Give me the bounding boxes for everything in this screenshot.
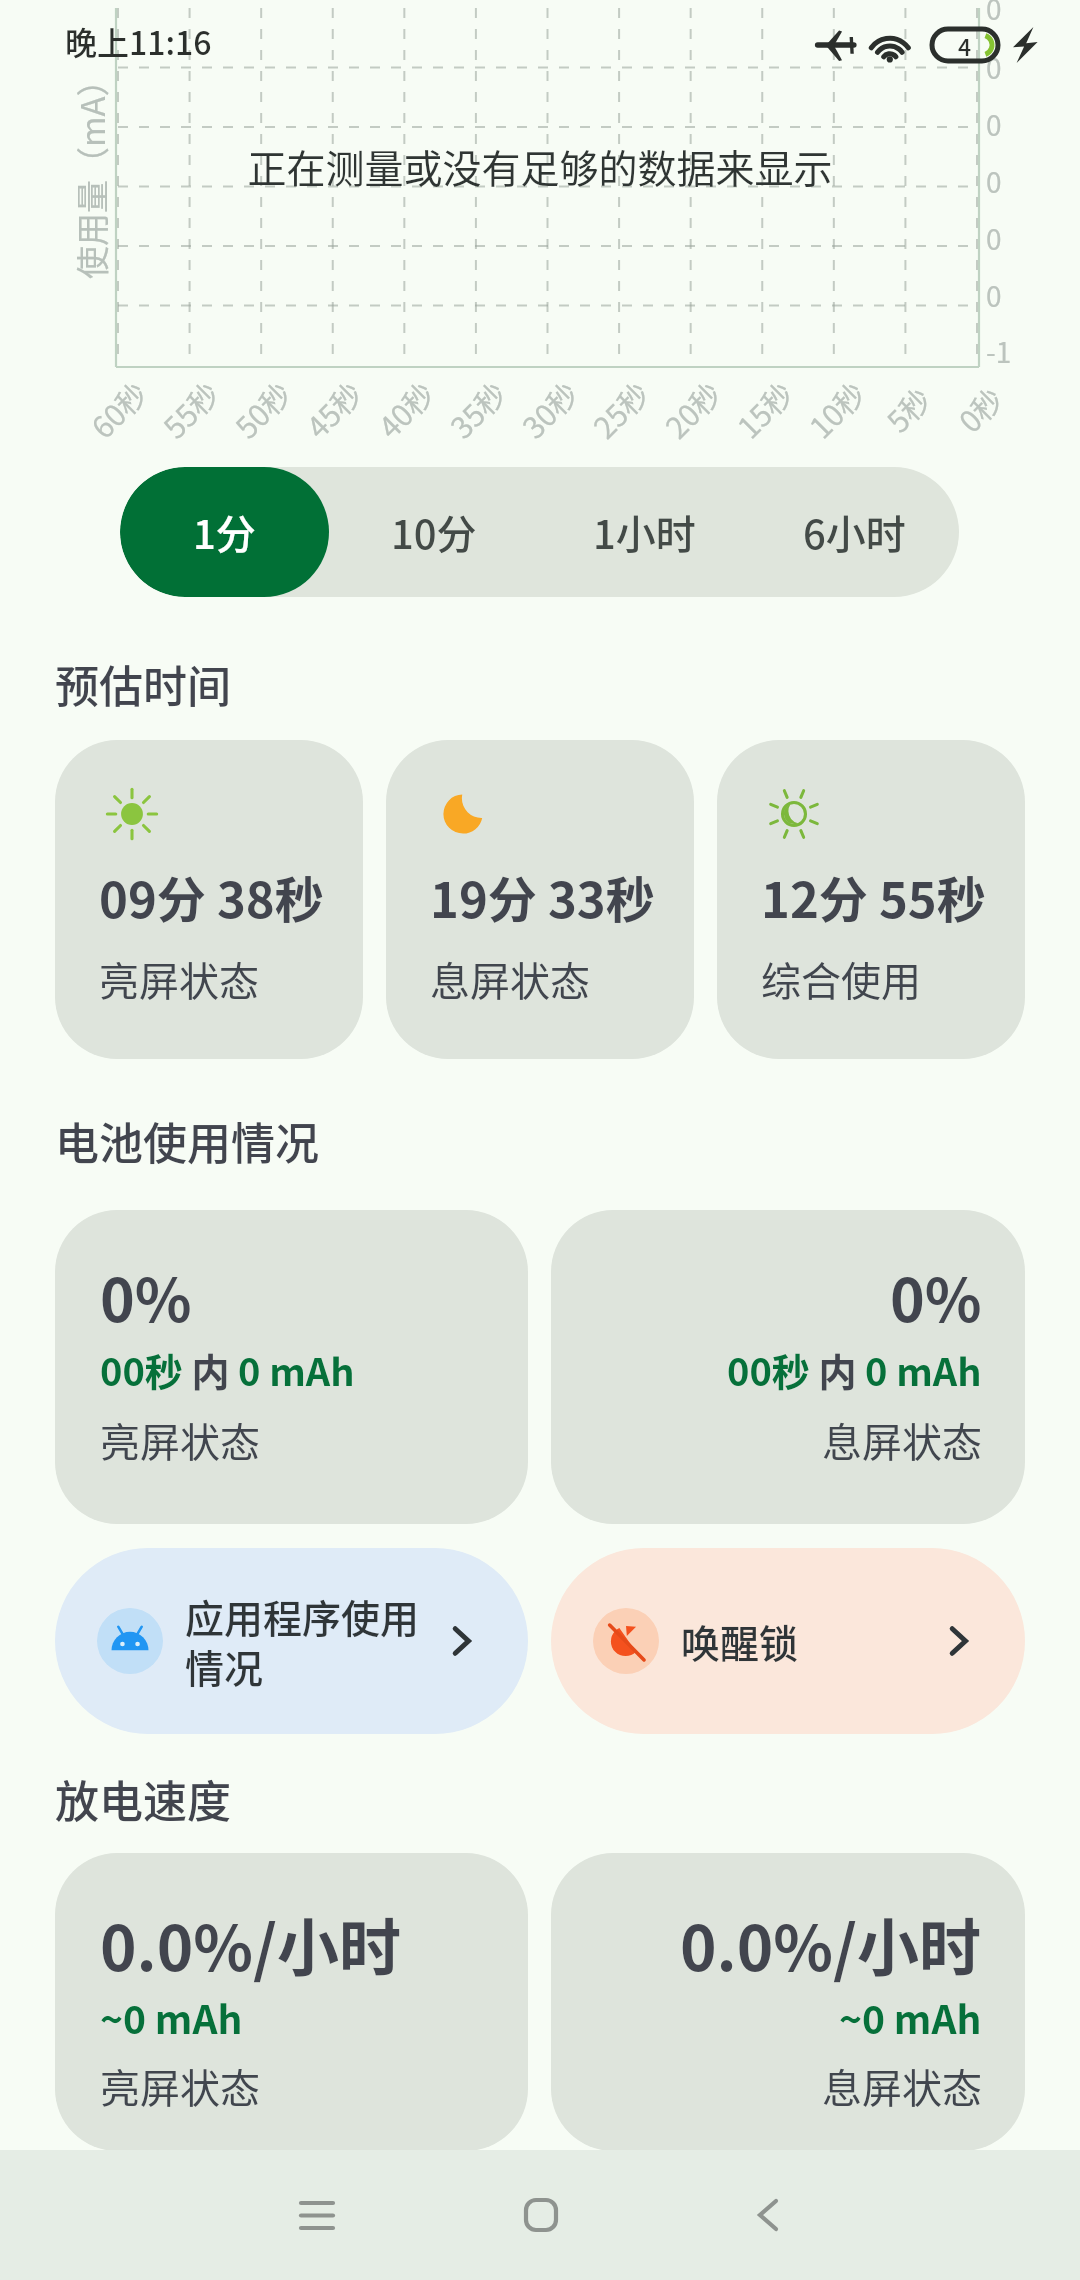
staticText: 5秒 bbox=[876, 377, 939, 440]
staticText: 00秒 内 0 mAh bbox=[727, 1342, 982, 1397]
staticText: 45秒 bbox=[295, 371, 371, 446]
staticText: 10分 bbox=[391, 503, 477, 561]
staticText: 1小时 bbox=[593, 503, 696, 561]
button[interactable]: 10分 bbox=[329, 467, 539, 597]
staticText: 6小时 bbox=[803, 503, 906, 561]
staticText: 25秒 bbox=[582, 371, 658, 446]
button[interactable]: 0.0%/小时 bbox=[551, 1853, 1025, 2151]
button[interactable]: 0% bbox=[55, 1210, 528, 1524]
staticText: ~0 mAh bbox=[839, 1989, 982, 2045]
button[interactable]: 19分 33秒 bbox=[386, 740, 694, 1059]
staticText: 0 bbox=[986, 218, 1002, 259]
staticText: 息屏状态 bbox=[822, 1411, 982, 1469]
staticText: 亮屏状态 bbox=[100, 2057, 260, 2115]
button[interactable]: 应用程序使用 情况 bbox=[55, 1548, 528, 1734]
staticText: 正在测量或没有足够的数据来显示 bbox=[0, 138, 1080, 194]
staticText: 0% bbox=[100, 1254, 192, 1339]
staticText: 唤醒锁 bbox=[681, 1613, 941, 1669]
button[interactable]: Back bbox=[712, 2159, 823, 2270]
staticText: ~0 mAh bbox=[100, 1989, 243, 2045]
button[interactable]: 09分 38秒 bbox=[55, 740, 363, 1059]
staticText: 综合使用 bbox=[761, 950, 921, 1008]
staticText: 息屏状态 bbox=[430, 950, 590, 1008]
staticText: 息屏状态 bbox=[822, 2057, 982, 2115]
staticText: 60秒 bbox=[80, 371, 156, 446]
button[interactable]: Home bbox=[485, 2159, 596, 2270]
button[interactable]: 6小时 bbox=[749, 467, 959, 597]
staticText: 0 bbox=[986, 104, 1002, 145]
staticText: 09分 38秒 bbox=[99, 861, 324, 932]
staticText: 0 bbox=[986, 161, 1002, 202]
staticText: 0% bbox=[890, 1254, 982, 1339]
staticText: 0.0%/小时 bbox=[680, 1899, 982, 1989]
staticText: 预估时间 bbox=[55, 652, 231, 716]
staticText: 10秒 bbox=[798, 371, 874, 446]
staticText: 使用量（mA） bbox=[67, 63, 115, 279]
staticText: 放电速度 bbox=[55, 1767, 231, 1831]
staticText: 亮屏状态 bbox=[100, 1411, 260, 1469]
staticText: 0秒 bbox=[948, 377, 1011, 440]
staticText: 12分 55秒 bbox=[761, 861, 986, 932]
staticText: 应用程序使用 情况 bbox=[185, 1588, 444, 1694]
staticText: 0.0%/小时 bbox=[100, 1899, 402, 1989]
button[interactable]: Recents bbox=[261, 2159, 372, 2270]
staticText: 30秒 bbox=[511, 371, 587, 446]
staticText: 晚上11:16 bbox=[65, 18, 212, 64]
staticText: 0 bbox=[986, 0, 1002, 29]
staticText: 20秒 bbox=[654, 371, 730, 446]
staticText: -1 bbox=[986, 331, 1012, 372]
staticText: 50秒 bbox=[224, 371, 300, 446]
button[interactable]: 12分 55秒 bbox=[717, 740, 1025, 1059]
button[interactable]: 唤醒锁 bbox=[551, 1548, 1025, 1734]
staticText: 35秒 bbox=[439, 371, 515, 446]
staticText: 电池使用情况 bbox=[55, 1109, 319, 1173]
staticText: 0 bbox=[986, 47, 1002, 88]
staticText: 55秒 bbox=[152, 371, 228, 446]
staticText: 0 bbox=[986, 275, 1002, 316]
staticText: 4 bbox=[958, 29, 972, 61]
staticText: 1分 bbox=[193, 503, 256, 561]
button[interactable]: 0.0%/小时 bbox=[55, 1853, 528, 2151]
staticText: 19分 33秒 bbox=[430, 861, 655, 932]
staticText: 亮屏状态 bbox=[99, 950, 259, 1008]
button[interactable]: 1小时 bbox=[539, 467, 749, 597]
staticText: 00秒 内 0 mAh bbox=[100, 1342, 355, 1397]
staticText: 40秒 bbox=[367, 371, 443, 446]
button[interactable]: 1分 bbox=[120, 467, 329, 597]
button[interactable]: 0% bbox=[551, 1210, 1025, 1524]
staticText: 15秒 bbox=[726, 371, 802, 446]
